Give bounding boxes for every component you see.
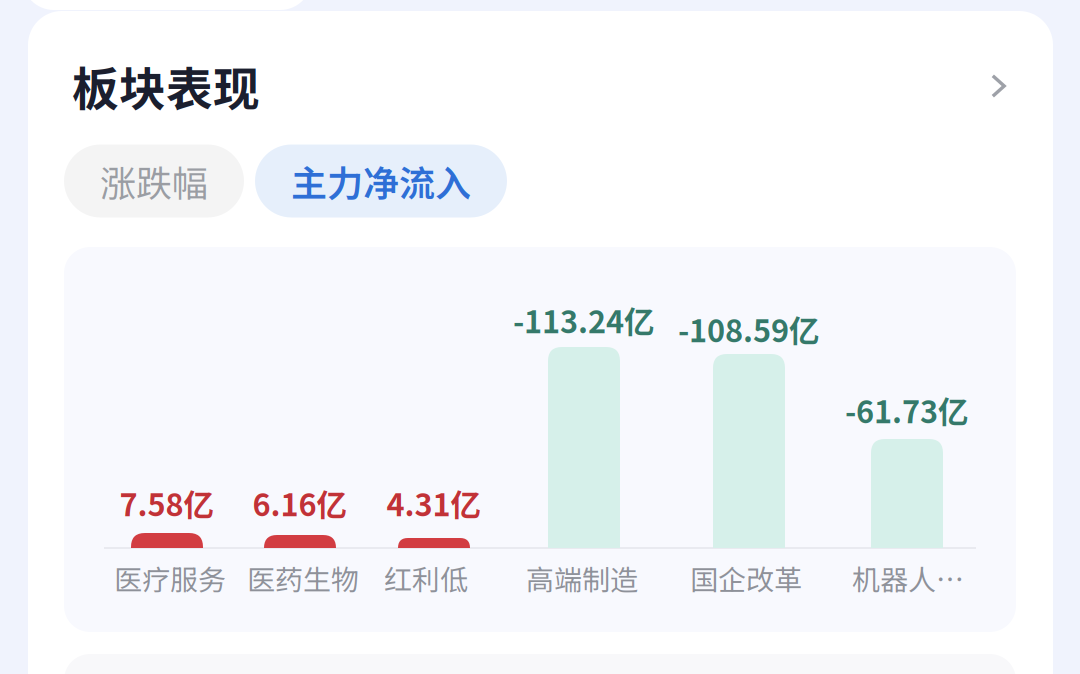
staticText: -108.59亿 <box>678 307 820 351</box>
staticText: -61.73亿 <box>845 388 969 432</box>
button[interactable]: 板块表现 <box>28 40 1053 132</box>
staticText: 医药生物 <box>247 558 359 598</box>
staticText: -113.24亿 <box>513 298 655 342</box>
staticText: 7.58亿 <box>119 481 214 525</box>
staticText: 4.31亿 <box>386 481 481 525</box>
button[interactable]: 主力净流入 <box>255 144 507 217</box>
staticText: 主力净流入 <box>291 155 471 207</box>
button[interactable]: 涨跌幅 <box>64 144 244 217</box>
staticText: 板块表现 <box>72 52 260 120</box>
staticText: 涨跌幅 <box>100 155 208 207</box>
staticText: 医疗服务 <box>114 558 226 598</box>
staticText: 6.16亿 <box>252 481 347 525</box>
staticText: 高端制造 <box>526 558 638 598</box>
staticText: 机器人… <box>852 558 964 598</box>
staticText: 国企改革 <box>690 558 802 598</box>
staticText: 红利低 <box>384 558 468 598</box>
